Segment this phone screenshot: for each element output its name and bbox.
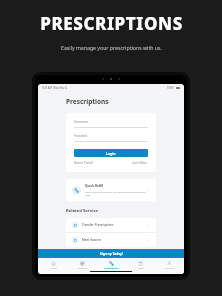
button[interactable]: New to Portal? (74, 161, 94, 165)
button[interactable]: Username (74, 120, 148, 128)
staticText: 9:41 AM Mon Nov 4 (42, 86, 67, 90)
button[interactable]: Sign up Today! (38, 249, 184, 258)
staticText: Account (165, 267, 174, 270)
staticText: Sign up Today! (100, 252, 123, 256)
staticText: Easily manage your prescriptions with us… (61, 44, 162, 51)
button[interactable]: Transfer Prescriptions (66, 218, 156, 232)
staticText: Meet Vaccine (82, 238, 147, 242)
button[interactable]: Store (126, 260, 155, 271)
staticText: Don't have an account? You don't need on… (85, 190, 147, 196)
staticText: Services (78, 267, 87, 270)
button[interactable]: Home (38, 260, 68, 271)
staticText: Password (74, 134, 88, 138)
button[interactable]: Account (155, 260, 184, 271)
staticText: Quick Refill (85, 184, 104, 188)
staticText: Prescriptions (66, 97, 109, 106)
button[interactable]: Prescriptions (97, 260, 126, 271)
staticText: PRESCRIPTIONS (40, 12, 183, 35)
staticText: 100% (167, 86, 174, 90)
staticText: Transfer Prescriptions (82, 223, 147, 227)
staticText: Username (74, 120, 89, 124)
button[interactable]: Quick Refill (66, 179, 156, 201)
button[interactable]: Learn More (132, 161, 148, 165)
staticText: New to Portal? (74, 161, 94, 165)
staticText: Login (106, 151, 116, 156)
staticText: Related Service (66, 208, 99, 214)
button[interactable]: Login (74, 149, 148, 157)
button[interactable]: Password (74, 134, 148, 142)
staticText: Home (50, 267, 57, 270)
staticText: Store (138, 267, 144, 270)
staticText: Learn More (132, 161, 148, 165)
staticText: Prescriptions (104, 267, 119, 270)
button[interactable]: Services (68, 260, 97, 271)
button[interactable]: Meet Vaccine (66, 233, 156, 247)
